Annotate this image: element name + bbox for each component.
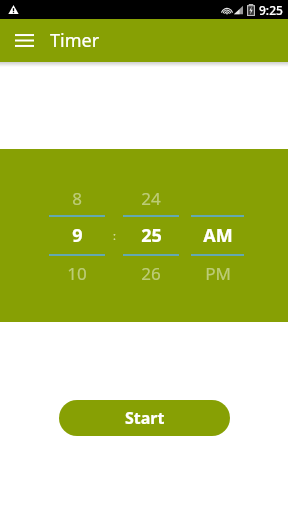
staticText: 10 [67,262,87,285]
staticText: 8 [72,187,82,210]
staticText: PM [205,262,231,285]
button[interactable]: 26 [121,256,181,290]
button[interactable]: 9 [47,217,107,254]
button[interactable]: 8 [47,181,107,215]
staticText: 24 [141,187,161,210]
button[interactable]: Start [59,400,230,436]
button[interactable]: 10 [47,256,107,290]
staticText: 26 [141,262,161,285]
staticText: AM [203,223,233,248]
staticText: Start [125,407,165,429]
button[interactable]: Open navigation drawer [0,19,48,62]
staticText: 9:25 [259,2,283,18]
staticText: : [113,228,116,243]
button[interactable]: 25 [121,217,181,254]
button[interactable]: PM [191,256,244,290]
staticText: 25 [141,223,162,248]
staticText: Timer [50,28,100,53]
button[interactable]: AM [191,217,244,254]
staticText: 9 [72,223,83,248]
button[interactable]: 24 [121,181,181,215]
